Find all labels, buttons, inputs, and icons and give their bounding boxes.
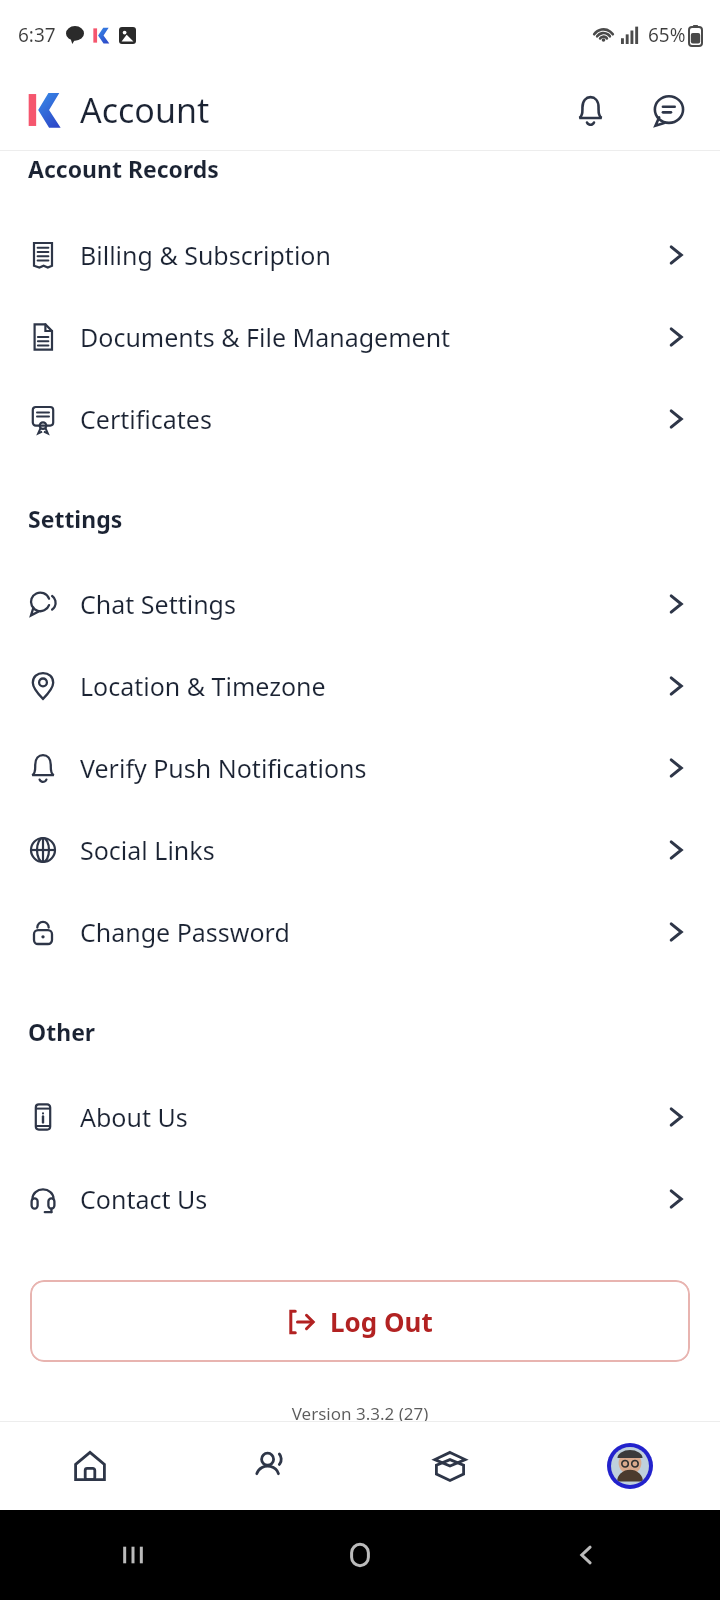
staticText: Other xyxy=(28,1016,96,1047)
staticText: Contact Us xyxy=(80,1182,208,1216)
button[interactable]: Courses xyxy=(360,1422,540,1510)
staticText: Location & Timezone xyxy=(80,669,326,703)
button[interactable]: Notifications xyxy=(562,82,618,138)
button[interactable]: Messages xyxy=(640,82,696,138)
staticText: Change Password xyxy=(80,915,290,949)
button[interactable]: Change Password xyxy=(0,891,720,973)
button[interactable]: Home xyxy=(0,1422,180,1510)
button[interactable]: Social Links xyxy=(0,809,720,891)
staticText: Certificates xyxy=(80,402,212,436)
staticText: Account xyxy=(80,87,210,133)
button[interactable]: Contact Us xyxy=(0,1158,720,1240)
button[interactable]: Log Out xyxy=(30,1280,690,1362)
staticText: Verify Push Notifications xyxy=(80,751,367,785)
button[interactable]: Profile xyxy=(540,1422,720,1510)
staticText: About Us xyxy=(80,1100,188,1134)
staticText: Log Out xyxy=(330,1304,433,1339)
button[interactable]: Documents & File Management xyxy=(0,296,720,378)
staticText: 6:37 xyxy=(18,22,56,48)
staticText: Version 3.3.2 (27) xyxy=(0,1402,720,1421)
button[interactable]: Certificates xyxy=(0,378,720,460)
staticText: Account Records xyxy=(28,153,219,184)
staticText: 65% xyxy=(648,22,686,48)
button[interactable]: Billing & Subscription xyxy=(0,214,720,296)
button[interactable]: Verify Push Notifications xyxy=(0,727,720,809)
staticText: Settings xyxy=(28,503,123,534)
button[interactable]: Community xyxy=(180,1422,360,1510)
staticText: Documents & File Management xyxy=(80,320,451,354)
button[interactable]: Location & Timezone xyxy=(0,645,720,727)
staticText: Billing & Subscription xyxy=(80,238,331,272)
staticText: Chat Settings xyxy=(80,587,236,621)
staticText: Social Links xyxy=(80,833,215,867)
button[interactable]: Chat Settings xyxy=(0,563,720,645)
button[interactable]: About Us xyxy=(0,1076,720,1158)
